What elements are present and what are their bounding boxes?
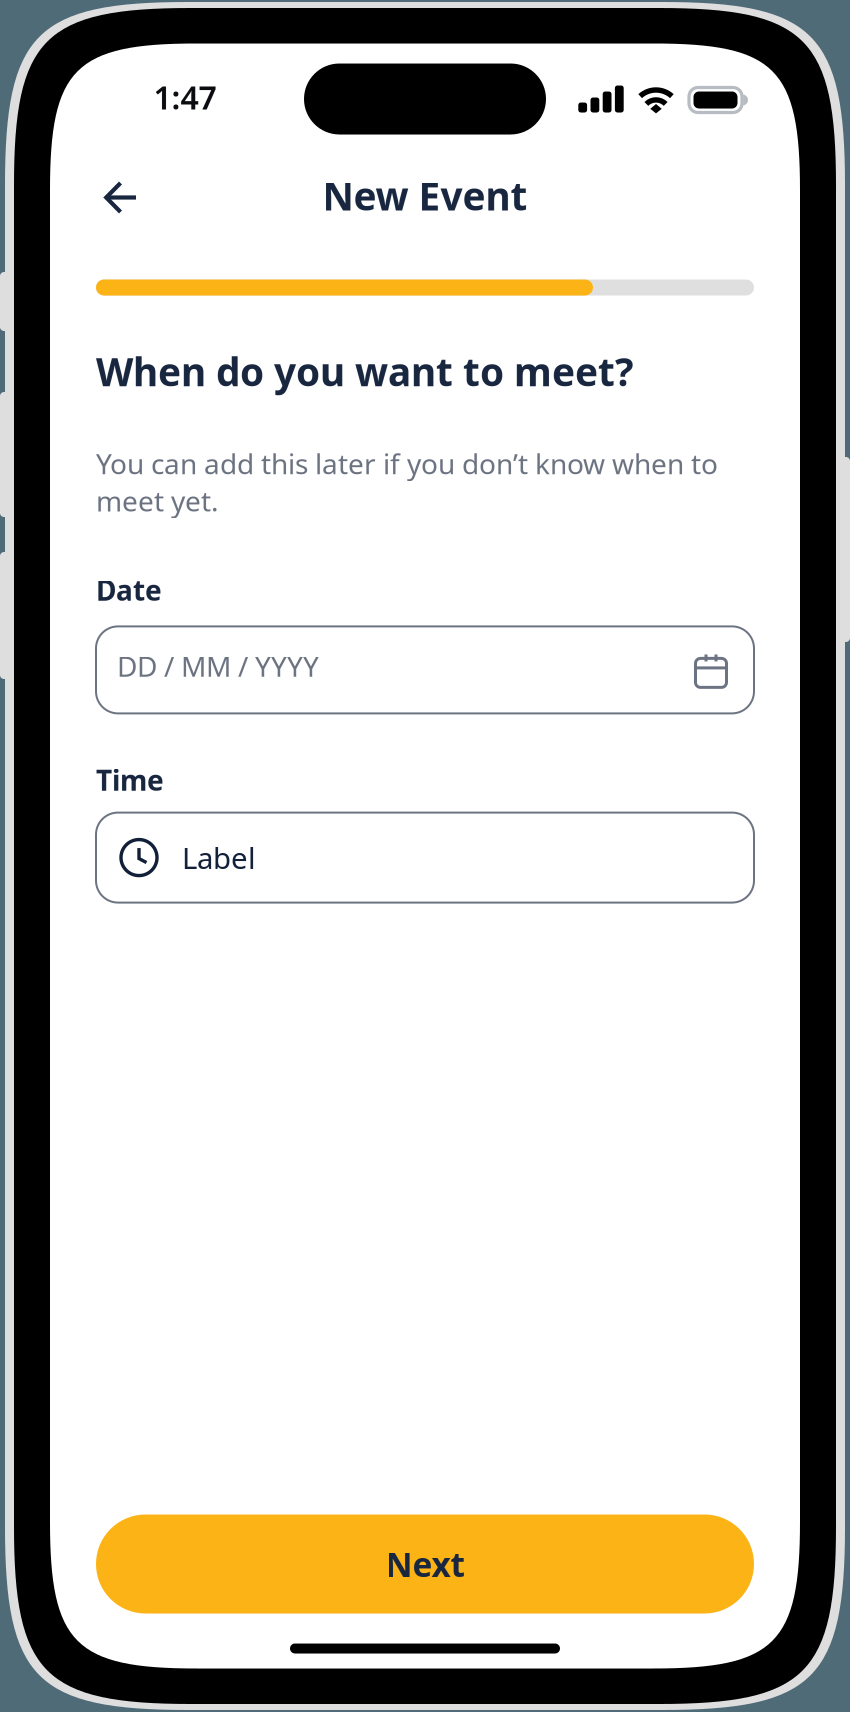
staticText: 1:47 xyxy=(153,76,216,118)
staticText: Date xyxy=(96,571,162,608)
staticText: Time xyxy=(96,761,164,799)
staticText: When do you want to meet? xyxy=(96,345,633,397)
button[interactable]: Next xyxy=(96,1514,754,1613)
staticText: Next xyxy=(385,1542,464,1586)
button[interactable]: Back xyxy=(88,164,154,226)
staticText: DD / MM / YYYY xyxy=(117,647,319,684)
staticText: Label xyxy=(182,838,256,877)
staticText: You can add this later if you don’t know… xyxy=(96,445,718,519)
staticText: New Event xyxy=(322,170,527,221)
